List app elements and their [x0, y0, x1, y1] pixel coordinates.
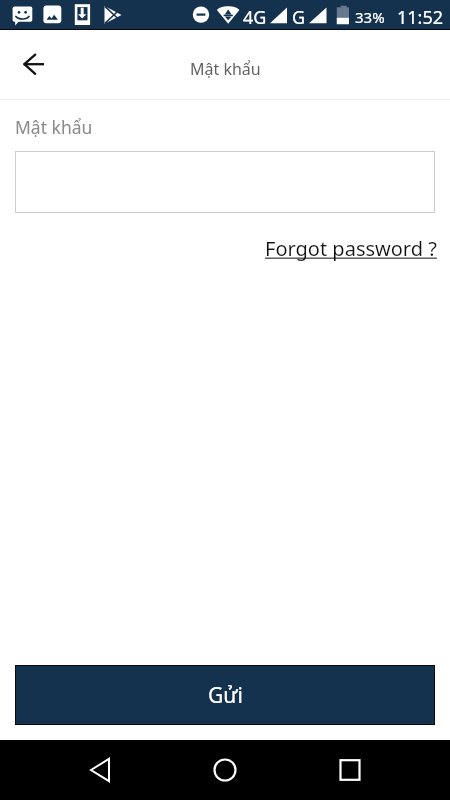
button[interactable]: Home	[201, 746, 249, 794]
staticText: Gửi	[208, 681, 243, 710]
button[interactable]: Forgot password ?	[265, 235, 437, 262]
staticText: Forgot password ?	[265, 235, 437, 262]
button[interactable]: Gửi	[15, 665, 435, 725]
staticText: 11:52	[397, 5, 444, 30]
staticText: 4G	[243, 5, 267, 30]
staticText: G	[292, 5, 306, 30]
button[interactable]: Back	[76, 746, 124, 794]
staticText: Mật khẩu	[15, 115, 93, 139]
staticText: Mật khẩu	[190, 58, 261, 80]
button[interactable]: Recent apps	[326, 746, 374, 794]
button[interactable]: Back	[14, 45, 54, 85]
staticText: 33%	[355, 7, 385, 27]
button[interactable]	[15, 151, 435, 213]
